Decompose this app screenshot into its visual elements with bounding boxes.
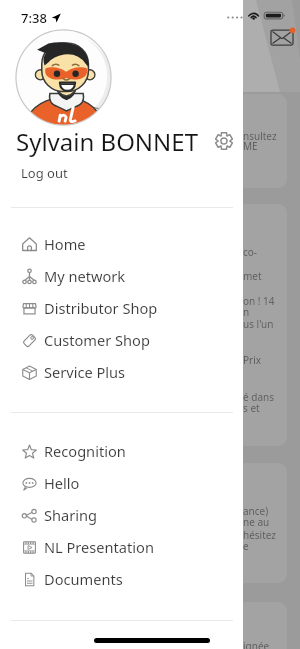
staticText: Sylvain BONNET	[16, 125, 199, 158]
staticText: nsultez	[243, 129, 277, 143]
button[interactable]: Home	[0, 229, 243, 259]
staticText: Prix	[243, 353, 262, 367]
staticText: 7:38	[21, 9, 47, 27]
staticText: Service Plus	[44, 362, 126, 382]
button[interactable]: Distributor Shop	[0, 293, 243, 323]
staticText: NL Presentation	[44, 537, 154, 557]
button[interactable]: Sharing	[0, 500, 243, 530]
staticText: Distributor Shop	[44, 298, 158, 318]
button[interactable]: Documents	[0, 564, 243, 594]
staticText: e	[243, 539, 249, 553]
staticText: ignée	[243, 639, 270, 649]
button[interactable]: Recognition	[0, 436, 243, 466]
staticText: hésitez	[243, 528, 277, 542]
button[interactable]: Settings	[210, 127, 238, 155]
staticText: ME	[243, 139, 258, 153]
staticText: Hello	[44, 473, 80, 493]
button[interactable]: Hello	[0, 468, 243, 498]
button[interactable]: My network	[0, 261, 243, 291]
staticText: Sharing	[44, 505, 98, 525]
staticText: ne au	[243, 515, 270, 529]
staticText: Log out	[21, 164, 68, 182]
staticText: co-	[243, 245, 258, 259]
button[interactable]: NL Presentation	[0, 532, 243, 562]
staticText: Documents	[44, 569, 123, 589]
staticText: s et	[243, 401, 260, 415]
button[interactable]: Messages	[270, 29, 296, 47]
staticText: My network	[44, 266, 126, 286]
staticText: é dans	[243, 390, 274, 404]
button[interactable]: Log out	[13, 161, 76, 185]
button[interactable]: Service Plus	[0, 357, 243, 387]
staticText: Recognition	[44, 441, 126, 461]
button[interactable]: Customer Shop	[0, 325, 243, 355]
staticText: Home	[44, 234, 86, 254]
staticText: Customer Shop	[44, 330, 150, 350]
staticText: us l'un	[243, 317, 274, 331]
staticText: on ! 14	[243, 294, 275, 308]
staticText: n	[243, 305, 250, 319]
staticText: ance)	[243, 504, 269, 518]
staticText: met	[243, 269, 262, 283]
